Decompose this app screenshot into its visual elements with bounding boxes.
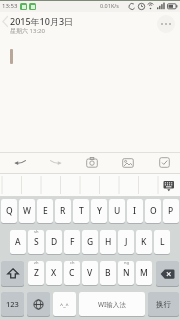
button[interactable]: T: [73, 199, 89, 223]
staticText: U: [114, 205, 121, 217]
staticText: D: [51, 236, 58, 248]
button[interactable]: D: [46, 230, 62, 254]
staticText: A: [15, 236, 21, 248]
button[interactable]: R: [55, 199, 71, 223]
staticText: N: [123, 267, 130, 279]
button[interactable]: [157, 15, 175, 33]
staticText: G: [87, 236, 94, 248]
button[interactable]: S: [28, 230, 44, 254]
button[interactable]: [110, 152, 146, 173]
staticText: zh: [34, 261, 39, 265]
button[interactable]: Q: [1, 199, 17, 223]
staticText: ch: [70, 261, 75, 265]
staticText: H: [105, 236, 112, 248]
button[interactable]: [38, 152, 74, 173]
button[interactable]: V: [82, 261, 98, 285]
staticText: L: [160, 236, 165, 248]
button[interactable]: F: [64, 230, 80, 254]
button[interactable]: [2, 152, 38, 173]
button[interactable]: ^_^: [53, 292, 76, 316]
staticText: 星期六 13:20: [10, 27, 45, 35]
staticText: B: [105, 267, 111, 279]
staticText: X: [51, 267, 57, 279]
button[interactable]: E: [37, 199, 53, 223]
button[interactable]: WI输入法: [79, 292, 145, 316]
button[interactable]: X: [46, 261, 62, 285]
button[interactable]: P: [163, 199, 179, 223]
staticText: E: [43, 205, 48, 217]
button[interactable]: K: [136, 230, 152, 254]
button[interactable]: U: [109, 199, 125, 223]
button[interactable]: M: [136, 261, 152, 285]
staticText: K: [141, 236, 147, 248]
button[interactable]: [1, 261, 24, 286]
staticText: R: [60, 205, 66, 217]
staticText: WI输入法: [98, 300, 126, 309]
button[interactable]: [74, 152, 110, 173]
button[interactable]: [0, 173, 180, 197]
button[interactable]: I: [127, 199, 143, 223]
staticText: Y: [97, 205, 102, 217]
staticText: 123: [6, 299, 19, 309]
staticText: C: [69, 267, 75, 279]
button[interactable]: H: [100, 230, 116, 254]
staticText: 换行: [156, 300, 171, 309]
staticText: sh: [34, 230, 39, 234]
staticText: 0.01K/s: [100, 2, 119, 9]
button[interactable]: L: [154, 230, 170, 254]
button[interactable]: A: [10, 230, 26, 254]
staticText: M: [140, 267, 148, 279]
staticText: P: [168, 205, 174, 217]
staticText: 2015年10月3日: [10, 15, 74, 27]
staticText: F: [70, 236, 75, 248]
staticText: W: [23, 205, 31, 217]
staticText: 13:53: [2, 2, 18, 10]
staticText: O: [150, 205, 157, 217]
button[interactable]: Y: [91, 199, 107, 223]
staticText: ng: [124, 261, 129, 265]
button[interactable]: [27, 292, 50, 316]
button[interactable]: Z: [28, 261, 44, 285]
staticText: J: [125, 236, 128, 248]
staticText: V: [87, 267, 93, 279]
button[interactable]: [146, 152, 180, 173]
button[interactable]: [2, 16, 9, 27]
button[interactable]: G: [82, 230, 98, 254]
button[interactable]: N: [118, 261, 134, 285]
button[interactable]: [156, 261, 179, 286]
staticText: T: [79, 205, 84, 217]
button[interactable]: 换行: [148, 292, 179, 316]
button[interactable]: C: [64, 261, 80, 285]
staticText: Z: [34, 267, 39, 279]
staticText: S: [34, 236, 39, 248]
staticText: ^_^: [60, 301, 69, 308]
button[interactable]: O: [145, 199, 161, 223]
staticText: I: [133, 205, 137, 217]
button[interactable]: B: [100, 261, 116, 285]
button[interactable]: 123: [1, 292, 24, 316]
button[interactable]: J: [118, 230, 134, 254]
button[interactable]: W: [19, 199, 35, 223]
staticText: Q: [6, 205, 13, 217]
